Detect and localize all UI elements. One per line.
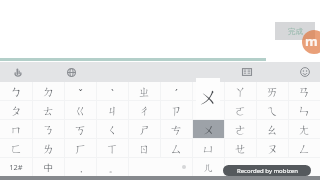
button[interactable]: ㄢ [289, 82, 320, 100]
button[interactable]: ㄋ [33, 120, 64, 138]
staticText: ㄈ [10, 141, 23, 156]
staticText: ㄞ [266, 84, 279, 99]
button[interactable]: ㄏ [65, 139, 96, 157]
button[interactable]: ㄞ [257, 82, 288, 100]
button[interactable]: ㄩ [193, 139, 224, 157]
button[interactable]: ㄌ [33, 139, 64, 157]
button[interactable]: Handwriting [9, 65, 26, 79]
staticText: ㄆ [10, 103, 23, 118]
staticText: 12# [9, 162, 23, 172]
button[interactable]: ㄧ [193, 101, 224, 119]
staticText: ㄨ [202, 122, 215, 137]
button[interactable]: 中 [33, 158, 64, 176]
staticText: ㄕ [138, 122, 151, 137]
button[interactable]: ˊ [161, 82, 192, 100]
button[interactable]: ㄊ [33, 101, 64, 119]
staticText: ㄉ [42, 84, 55, 99]
staticText: ㄅ [10, 84, 23, 99]
button[interactable]: ㄛ [225, 101, 256, 119]
staticText: ㄛ [234, 103, 247, 118]
staticText: ㄨ [198, 85, 219, 110]
button[interactable]: ㄓ [129, 82, 160, 100]
button[interactable]: ㄝ [225, 139, 256, 157]
staticText: ㄎ [74, 122, 87, 137]
staticText: ㄟ [266, 103, 279, 118]
staticText: ㄔ [138, 103, 151, 118]
button[interactable]: 。 [97, 158, 128, 176]
button[interactable]: ㄍ [65, 101, 96, 119]
staticText: ㄗ [170, 103, 183, 118]
button[interactable]: ㄎ [65, 120, 96, 138]
staticText: ㄚ [234, 84, 247, 99]
button[interactable]: ㄉ [33, 82, 64, 100]
button[interactable]: ㄤ [289, 120, 320, 138]
button[interactable]: ㄚ [225, 82, 256, 100]
button[interactable]: ㄥ [289, 139, 320, 157]
button[interactable]: ， [65, 158, 96, 176]
button[interactable]: ㄡ [257, 139, 288, 157]
button[interactable]: ㄒ [97, 139, 128, 157]
staticText: ㄌ [42, 141, 55, 156]
staticText: ㄦ [203, 161, 214, 174]
staticText: ˇ [78, 87, 83, 101]
staticText: 完成 [288, 27, 303, 36]
staticText: ㄐ [106, 103, 119, 118]
button[interactable]: ㄘ [161, 120, 192, 138]
staticText: ㄏ [74, 141, 87, 156]
button[interactable]: ㄙ [161, 139, 192, 157]
staticText: ㄥ [298, 141, 311, 156]
staticText: 。 [109, 164, 117, 174]
staticText: ㄢ [298, 84, 311, 99]
staticText: ㄠ [266, 122, 279, 137]
staticText: ㄍ [74, 103, 87, 118]
button[interactable]: ˋ [97, 82, 128, 100]
button[interactable]: Change language [63, 65, 80, 79]
staticText: ㄝ [234, 141, 247, 156]
button[interactable]: Emoji [296, 65, 313, 79]
staticText: ˋ [111, 87, 114, 101]
button[interactable]: ㄐ [97, 101, 128, 119]
button[interactable]: ㄑ [97, 120, 128, 138]
staticText: 中 [44, 162, 53, 173]
button[interactable]: ㄆ [0, 101, 32, 119]
button[interactable]: ˇ [65, 82, 96, 100]
staticText: ㄒ [106, 141, 119, 156]
button[interactable]: ㄔ [129, 101, 160, 119]
staticText: ㄖ [138, 141, 151, 156]
staticText: ˙ [208, 87, 210, 101]
staticText: ㄊ [42, 103, 55, 118]
button[interactable]: Enter [225, 158, 320, 176]
staticText: Recorded by mobizen [237, 167, 298, 175]
staticText: ㄓ [138, 84, 151, 99]
staticText: ㄙ [170, 141, 183, 156]
staticText: ㄡ [266, 141, 279, 156]
button[interactable]: ㄗ [161, 101, 192, 119]
staticText: ㄤ [298, 122, 311, 137]
button[interactable]: ㄦ [193, 158, 224, 176]
staticText: ㄋ [42, 122, 55, 137]
button[interactable]: ㄕ [129, 120, 160, 138]
staticText: ， [77, 164, 85, 174]
staticText: ㄑ [106, 122, 119, 137]
button[interactable]: ㄨ [193, 120, 224, 138]
staticText: ˊ [175, 87, 178, 101]
button[interactable]: Keyboard layout [238, 65, 255, 79]
staticText: ㄘ [170, 122, 183, 137]
button[interactable]: ㄠ [257, 120, 288, 138]
button[interactable]: ㄈ [0, 139, 32, 157]
button[interactable]: 12# [0, 158, 32, 176]
staticText: ㄇ [10, 122, 23, 137]
staticText: ㄣ [298, 103, 311, 118]
button[interactable]: 完成 [275, 22, 315, 40]
button[interactable]: ㄣ [289, 101, 320, 119]
button[interactable]: ㄜ [225, 120, 256, 138]
button[interactable]: ㄅ [0, 82, 32, 100]
staticText: ㄜ [234, 122, 247, 137]
button[interactable]: ㄇ [0, 120, 32, 138]
button[interactable]: ㄖ [129, 139, 160, 157]
staticText: ㄧ [202, 103, 215, 118]
button[interactable]: ˙ [193, 82, 224, 100]
button[interactable]: Space [129, 158, 192, 176]
button[interactable]: ㄟ [257, 101, 288, 119]
staticText: m [305, 32, 318, 50]
